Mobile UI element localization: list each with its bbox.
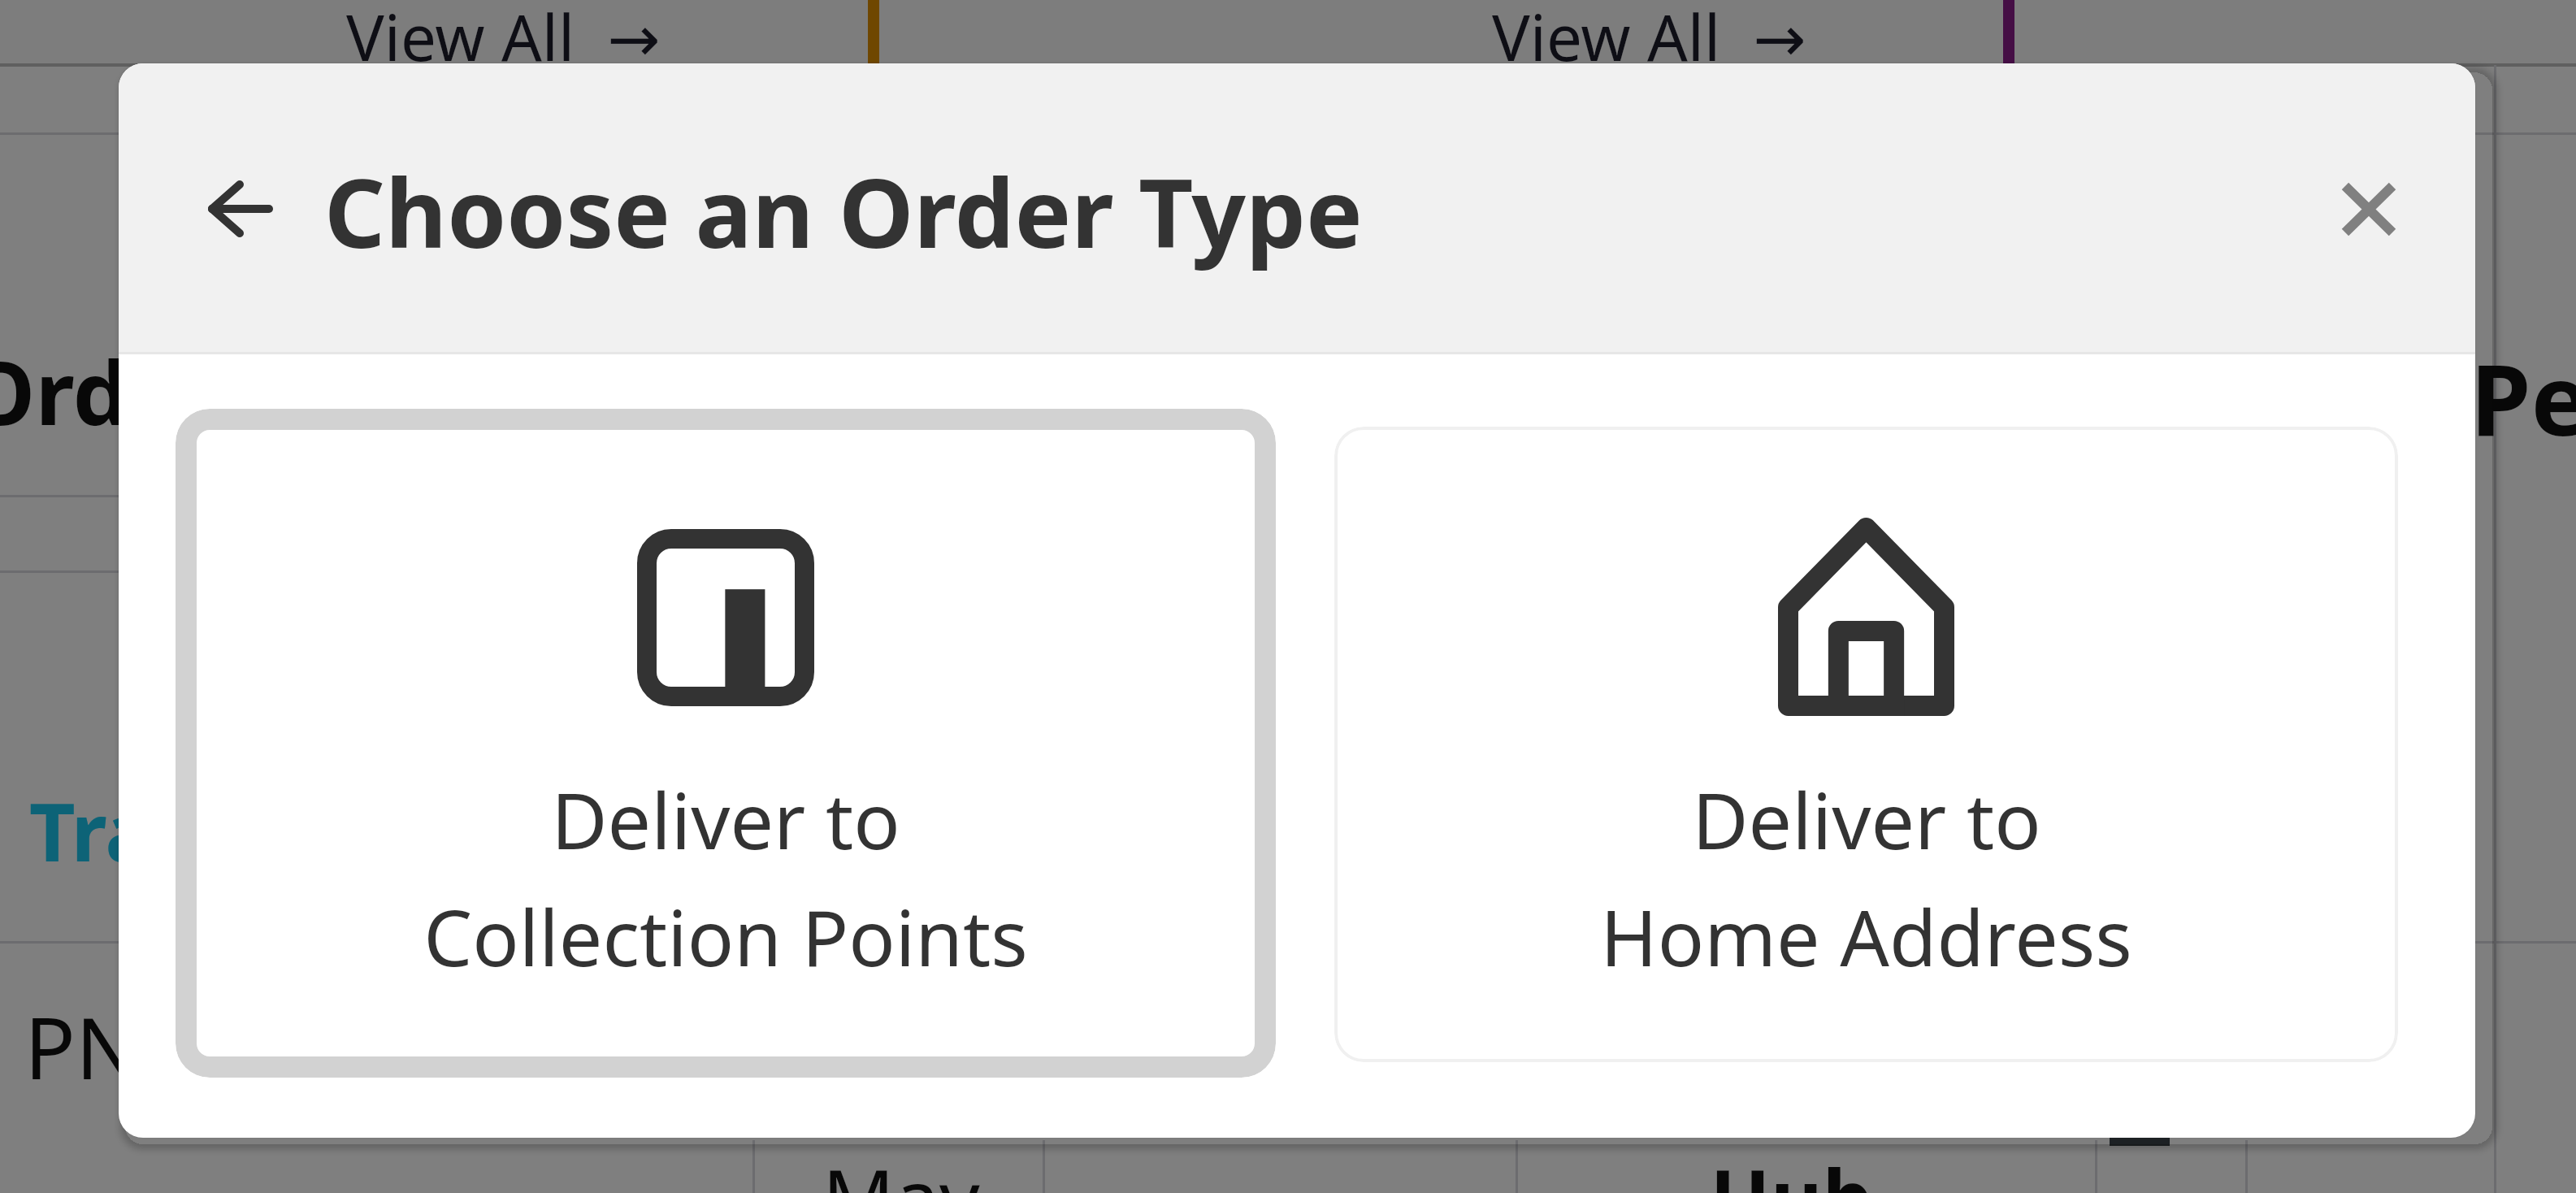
staticText: View All → bbox=[346, 0, 661, 80]
button[interactable]: Deliver to bbox=[176, 409, 1276, 1078]
button[interactable]: Deliver to bbox=[1334, 427, 2398, 1062]
staticText: View All → bbox=[1492, 0, 1806, 80]
staticText: Track Order bbox=[29, 776, 495, 884]
staticText: PN0012345 bbox=[24, 989, 479, 1104]
staticText: Deliver to bbox=[1692, 766, 2041, 871]
staticText: Choose an Order Type bbox=[324, 146, 1363, 275]
staticText: May bbox=[822, 1143, 980, 1193]
staticText: Pending bbox=[2470, 332, 2576, 464]
button[interactable]: Close bbox=[2320, 160, 2418, 258]
staticText: Collection Points bbox=[423, 883, 1028, 988]
staticText: Order Summary bbox=[0, 332, 661, 451]
button[interactable]: Back bbox=[184, 152, 297, 266]
staticText: Hub bbox=[1710, 1143, 1873, 1193]
staticText: Deliver to bbox=[551, 766, 900, 871]
staticText: Home Address bbox=[1600, 883, 2132, 988]
